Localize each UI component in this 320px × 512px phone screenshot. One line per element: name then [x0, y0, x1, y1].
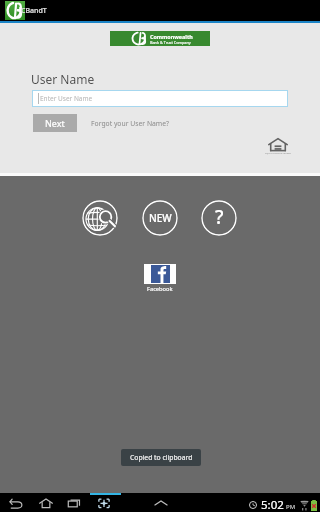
- button[interactable]: Next: [33, 114, 77, 132]
- staticText: EQUAL HOUSING LENDER: [262, 152, 294, 155]
- button[interactable]: Enter User Name: [32, 90, 288, 107]
- staticText: Copied to clipboard: [130, 453, 193, 462]
- button[interactable]: Home: [35, 493, 56, 512]
- staticText: Commonwealth: [150, 33, 193, 40]
- staticText: 5:02: [261, 497, 284, 512]
- staticText: CBandT: [21, 6, 47, 16]
- staticText: ?: [215, 204, 224, 230]
- staticText: Next: [45, 117, 65, 129]
- staticText: PM: [286, 503, 296, 511]
- staticText: Enter User Name: [40, 94, 93, 103]
- button[interactable]: Forgot your User Name?: [91, 119, 169, 128]
- button[interactable]: What's new: [142, 200, 178, 236]
- button[interactable]: Search the web: [82, 200, 118, 236]
- staticText: Bank & Trust Company: [150, 40, 191, 45]
- button[interactable]: Recents: [64, 493, 85, 512]
- button[interactable]: Screenshot: [93, 493, 114, 512]
- staticText: Facebook: [147, 285, 173, 293]
- button[interactable]: Help: [201, 200, 237, 236]
- staticText: NEW: [149, 211, 172, 225]
- button[interactable]: Back: [5, 493, 26, 512]
- button[interactable]: Facebook: [144, 264, 176, 292]
- button[interactable]: Expand: [150, 493, 171, 512]
- button[interactable]: CBandT: [0, 0, 62, 21]
- staticText: User Name: [31, 71, 95, 87]
